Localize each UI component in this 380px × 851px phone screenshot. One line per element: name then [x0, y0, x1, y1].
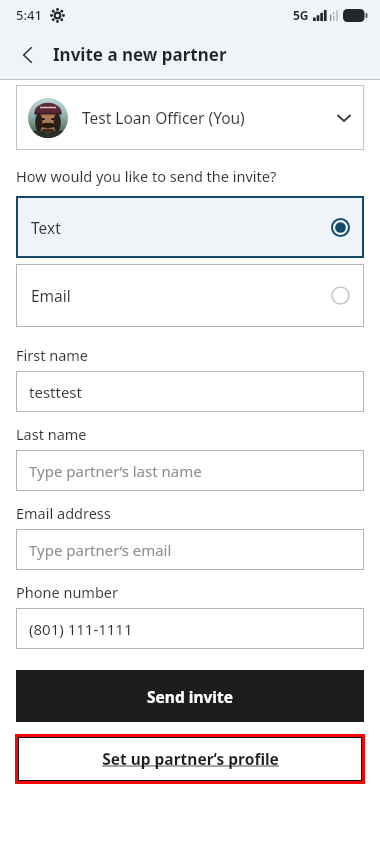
staticText: (801) 111-1111: [29, 619, 133, 639]
staticText: Type partner‘s email: [29, 540, 172, 560]
staticText: Text: [31, 217, 61, 238]
staticText: Send invite: [147, 686, 233, 707]
button[interactable]: Email: [16, 264, 364, 327]
button[interactable]: Text: [16, 196, 364, 258]
button[interactable]: Type partner‘s last name: [16, 450, 364, 491]
staticText: Phone number: [16, 582, 118, 602]
button[interactable]: Set up partner‘s profile: [18, 737, 362, 781]
staticText: Last name: [16, 424, 87, 444]
staticText: Test Loan Officer (You): [82, 107, 245, 128]
staticText: How would you like to send the invite?: [16, 166, 277, 186]
button[interactable]: (801) 111-1111: [16, 608, 364, 649]
staticText: 5G: [293, 7, 309, 23]
staticText: Email: [31, 285, 71, 306]
staticText: First name: [16, 345, 89, 365]
button[interactable]: Send invite: [16, 670, 364, 722]
staticText: Email address: [16, 503, 111, 523]
staticText: 5:41: [16, 6, 42, 24]
button[interactable]: Test Loan Officer (You): [16, 85, 364, 150]
staticText: Type partner‘s last name: [29, 461, 202, 481]
button[interactable]: Type partner‘s email: [16, 529, 364, 570]
staticText: Invite a new partner: [53, 43, 227, 66]
button[interactable]: testtest: [16, 371, 364, 412]
button[interactable]: Back: [10, 37, 46, 73]
staticText: testtest: [29, 382, 82, 402]
staticText: Set up partner‘s profile: [102, 748, 279, 769]
